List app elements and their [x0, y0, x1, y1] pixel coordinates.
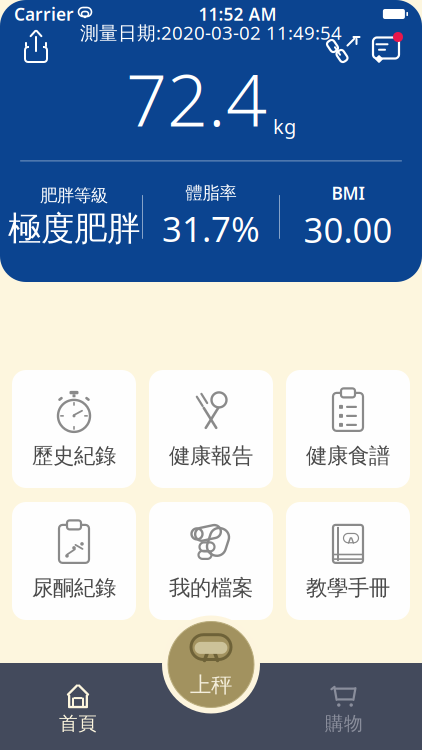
staticText: 上秤: [190, 672, 232, 698]
staticText: 歷史紀錄: [32, 443, 116, 469]
staticText: 測量日期:2020-03-02 11:49:54: [80, 20, 342, 45]
button[interactable]: Messages: [364, 26, 408, 70]
staticText: 30.00: [303, 206, 392, 252]
button[interactable]: 我的檔案: [149, 502, 273, 620]
staticText: 教學手冊: [306, 575, 390, 601]
staticText: kg: [273, 113, 296, 139]
staticText: 我的檔案: [169, 575, 253, 601]
staticText: 健康報告: [169, 443, 253, 469]
staticText: 健康食譜: [306, 443, 390, 469]
staticText: Carrier: [14, 2, 74, 25]
button[interactable]: Share: [14, 26, 58, 70]
staticText: 11:52 AM: [198, 2, 276, 25]
staticText: 肥胖等級: [40, 185, 108, 206]
staticText: 極度肥胖: [8, 208, 140, 249]
button[interactable]: Call: [320, 26, 364, 70]
staticText: 31.7%: [162, 206, 260, 252]
staticText: 體脂率: [185, 182, 236, 204]
button[interactable]: 教學手冊: [286, 502, 410, 620]
button[interactable]: 上秤: [162, 615, 260, 713]
staticText: 尿酮紀錄: [32, 575, 116, 601]
button[interactable]: 購物: [266, 678, 422, 740]
staticText: 購物: [325, 712, 363, 735]
button[interactable]: 尿酮紀錄: [12, 502, 136, 620]
staticText: 首頁: [59, 712, 97, 735]
button[interactable]: 健康食譜: [286, 370, 410, 488]
button[interactable]: 首頁: [0, 678, 156, 740]
button[interactable]: 健康報告: [149, 370, 273, 488]
button[interactable]: 歷史紀錄: [12, 370, 136, 488]
staticText: BMI: [331, 181, 364, 204]
staticText: 72.4: [126, 51, 267, 146]
